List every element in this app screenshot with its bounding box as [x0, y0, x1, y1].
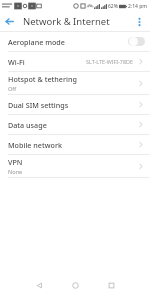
- staticText: Dual SIM settings: [8, 100, 69, 110]
- button[interactable]: Aeroplane mode: [0, 32, 150, 51]
- button[interactable]: VPN: [0, 155, 150, 177]
- button[interactable]: Hotspot & tethering: [0, 72, 150, 94]
- staticText: Aeroplane mode: [8, 37, 65, 47]
- staticText: 62%: [108, 3, 118, 10]
- button[interactable]: Recent apps: [100, 274, 122, 296]
- staticText: Off: [8, 85, 17, 93]
- staticText: Network & Internet: [23, 15, 130, 28]
- button[interactable]: More options: [130, 13, 148, 31]
- staticText: None: [8, 168, 23, 176]
- button[interactable]: Data usage: [0, 115, 150, 134]
- button[interactable]: Aeroplane mode toggle: [128, 36, 145, 47]
- button[interactable]: Mobile network: [0, 135, 150, 154]
- button[interactable]: Dual SIM settings: [0, 95, 150, 114]
- staticText: VPN: [8, 157, 23, 167]
- staticText: 2:14 pm: [128, 3, 148, 10]
- button[interactable]: Wi-Fi: [0, 52, 150, 71]
- button[interactable]: Back: [0, 12, 19, 31]
- button[interactable]: Home: [64, 274, 86, 296]
- staticText: SLT-LTE-WIFI-78DE: [86, 58, 133, 65]
- button[interactable]: Back: [28, 274, 50, 296]
- staticText: Wi-Fi: [8, 57, 25, 67]
- staticText: Mobile network: [8, 140, 62, 150]
- staticText: Hotspot & tethering: [8, 74, 77, 84]
- staticText: Data usage: [8, 120, 47, 130]
